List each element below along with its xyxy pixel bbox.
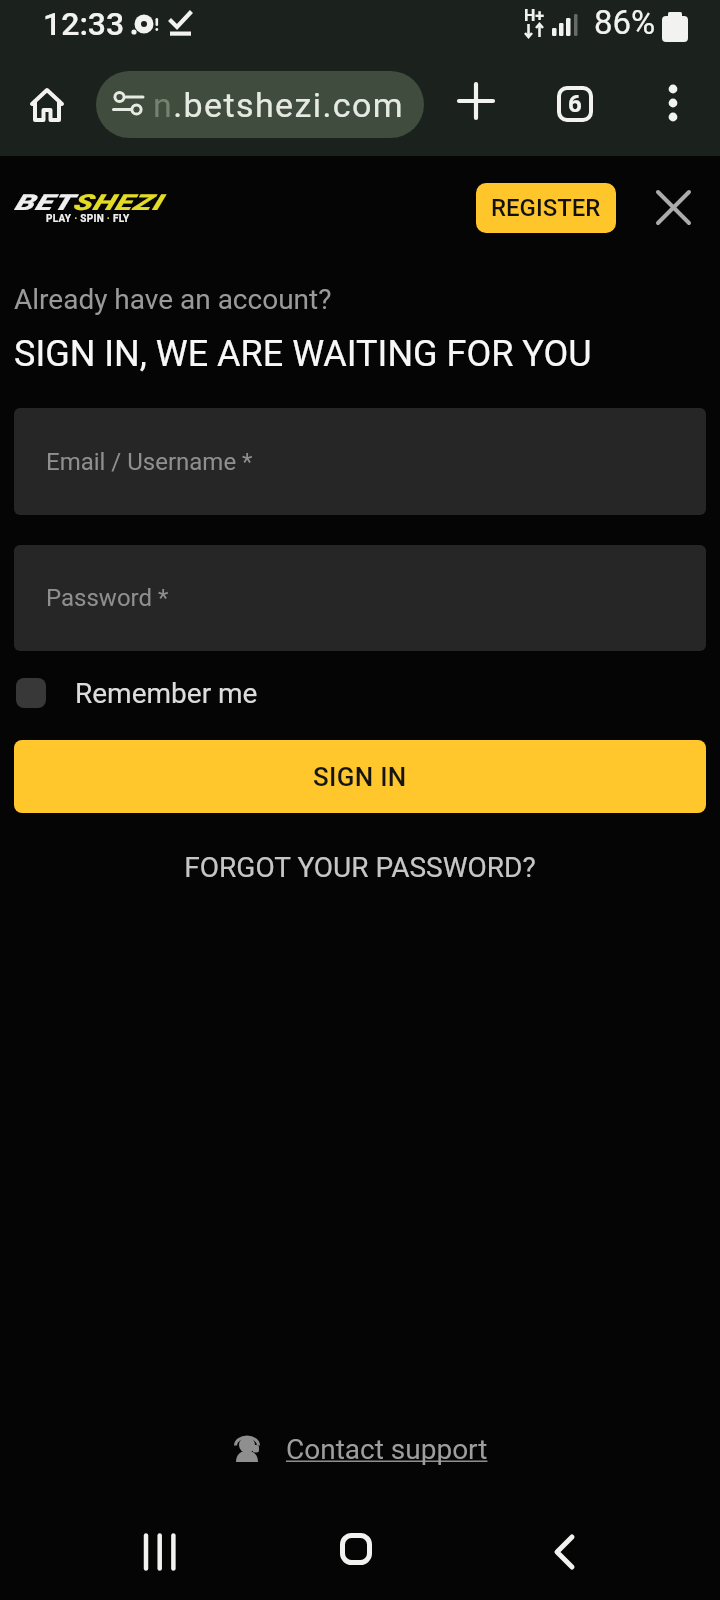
button[interactable]: Remember me (16, 671, 258, 715)
staticText: 12:33 (43, 5, 125, 43)
staticText: SIGN IN (313, 762, 407, 792)
staticText: n.betshezi.com (153, 85, 404, 125)
button[interactable]: Password * (14, 545, 706, 651)
staticText: Remember me (75, 677, 258, 710)
staticText: Email / Username * (46, 448, 253, 476)
staticText: Already have an account? (14, 283, 332, 316)
button[interactable]: BETSHEZI (14, 190, 174, 232)
button[interactable] (650, 184, 696, 230)
button[interactable]: Email / Username * (14, 408, 706, 515)
staticText: 6 (568, 90, 582, 118)
button[interactable]: SIGN IN (14, 740, 706, 813)
button[interactable] (132, 1524, 188, 1580)
staticText: Contact support (286, 1433, 488, 1466)
button[interactable]: Contact support (0, 1427, 720, 1471)
button[interactable] (24, 82, 70, 128)
staticText: REGISTER (491, 194, 601, 222)
staticText: Password * (46, 584, 169, 612)
button[interactable]: 6 (557, 86, 593, 122)
staticText: H+ (524, 6, 545, 25)
button[interactable]: FORGOT YOUR PASSWORD? (0, 845, 720, 889)
button[interactable] (536, 1524, 592, 1580)
staticText: BETSHEZI (14, 190, 162, 216)
button[interactable]: n.betshezi.com (96, 71, 424, 138)
staticText: 86% (594, 3, 656, 42)
button[interactable] (650, 80, 696, 126)
staticText: FORGOT YOUR PASSWORD? (184, 851, 536, 884)
button[interactable]: REGISTER (476, 183, 616, 233)
button[interactable] (328, 1521, 384, 1577)
staticText: PLAY · SPIN · FLY (46, 213, 130, 225)
staticText: SIGN IN, WE ARE WAITING FOR YOU (14, 333, 592, 375)
button[interactable] (452, 77, 500, 125)
